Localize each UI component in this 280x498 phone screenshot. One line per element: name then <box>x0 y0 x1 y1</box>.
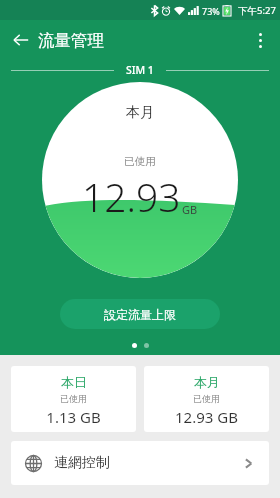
staticText: 設定流量上限 <box>104 307 176 322</box>
button[interactable]: 設定流量上限 <box>60 299 220 329</box>
staticText: 12.93 <box>82 170 181 223</box>
button[interactable]: 本月 <box>42 82 238 278</box>
staticText: 本月 <box>194 374 220 390</box>
button[interactable]: 本月 <box>144 366 269 432</box>
staticText: 下午5:27 <box>238 4 276 17</box>
staticText: 12.93 GB <box>175 407 238 427</box>
staticText: 已使用 <box>124 155 156 168</box>
staticText: 已使用 <box>193 393 220 404</box>
staticText: SIM 1 <box>126 63 154 77</box>
staticText: 本月 <box>126 104 154 122</box>
button[interactable]: 連網控制 <box>11 441 269 485</box>
staticText: GB <box>182 202 198 217</box>
staticText: 連網控制 <box>54 454 110 472</box>
button[interactable]: 本日 <box>11 366 136 432</box>
staticText: 1.13 GB <box>46 407 101 427</box>
button[interactable]: More options <box>245 25 275 55</box>
staticText: 73% <box>202 5 220 17</box>
staticText: 流量管理 <box>38 30 104 51</box>
staticText: 本日 <box>61 374 87 390</box>
staticText: 已使用 <box>60 393 87 404</box>
button[interactable]: Back <box>8 27 34 53</box>
